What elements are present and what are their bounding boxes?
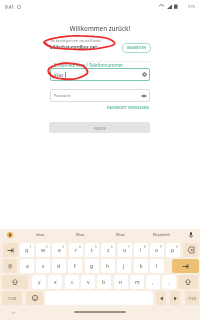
staticText: u xyxy=(123,247,127,254)
button[interactable]: z xyxy=(101,243,115,257)
staticText: 7 xyxy=(128,245,130,249)
staticText: Elisa xyxy=(116,232,125,237)
button[interactable]: , xyxy=(146,275,160,289)
staticText: E-Mail-Adresse / Telefonnummer xyxy=(54,62,123,68)
button[interactable]: s xyxy=(36,259,50,273)
staticText: Sie benötigen ein neues Konto? xyxy=(50,38,102,43)
staticText: 9 xyxy=(160,245,162,249)
button[interactable]: n xyxy=(114,275,128,289)
button[interactable]: . xyxy=(162,275,176,289)
button[interactable]: Voice input xyxy=(182,229,200,240)
staticText: g xyxy=(90,263,94,270)
staticText: 2 xyxy=(46,245,48,249)
staticText: z xyxy=(107,247,110,254)
staticText: h xyxy=(106,263,110,270)
button[interactable]: q xyxy=(20,243,34,257)
staticText: q xyxy=(25,247,29,254)
button[interactable]: e xyxy=(52,243,66,257)
button[interactable]: del xyxy=(183,243,198,257)
button[interactable]: g xyxy=(85,259,99,273)
staticText: y xyxy=(38,279,41,286)
staticText: e xyxy=(58,247,61,254)
staticText: r xyxy=(75,247,78,254)
button[interactable]: d xyxy=(52,259,66,273)
button[interactable]: l xyxy=(150,259,164,273)
button[interactable]: Elisa xyxy=(100,229,141,240)
button[interactable]: y xyxy=(32,275,46,289)
button[interactable]: enter xyxy=(172,259,199,273)
button[interactable]: larr xyxy=(156,291,166,305)
button[interactable]: elias xyxy=(50,68,150,81)
staticText: 3 xyxy=(62,245,64,249)
staticText: k xyxy=(140,263,143,270)
button[interactable]: tab xyxy=(3,243,18,257)
staticText: c xyxy=(71,279,74,286)
staticText: ?123 xyxy=(8,296,17,301)
staticText: m xyxy=(135,279,140,286)
staticText: d xyxy=(57,263,61,270)
button[interactable]: h xyxy=(101,259,115,273)
staticText: x xyxy=(54,279,57,286)
button[interactable]: rarr xyxy=(170,291,180,305)
button[interactable]: p xyxy=(166,243,180,257)
button[interactable]: w xyxy=(36,243,50,257)
staticText: w xyxy=(41,247,45,254)
staticText: elias xyxy=(36,232,45,237)
button[interactable]: BEARBEITEN xyxy=(122,43,151,53)
staticText: ?123 xyxy=(188,296,197,301)
staticText: l xyxy=(156,263,158,270)
staticText: 8 xyxy=(144,245,146,249)
button[interactable]: r xyxy=(69,243,83,257)
staticText: 5 xyxy=(95,245,97,249)
button[interactable]: t xyxy=(85,243,99,257)
button[interactable]: Show password xyxy=(141,93,147,99)
button[interactable]: j xyxy=(117,259,131,273)
button[interactable]: Elisabeth xyxy=(141,229,182,240)
staticText: 9:41 xyxy=(5,4,15,10)
staticText: s xyxy=(42,263,45,270)
staticText: b xyxy=(102,279,106,286)
button[interactable]: a xyxy=(20,259,34,273)
staticText: PASSWORT VERGESSEN xyxy=(107,105,149,110)
staticText: , xyxy=(152,279,154,286)
button[interactable]: u xyxy=(118,243,132,257)
staticText: bildschat-nordbus.net xyxy=(50,44,98,50)
staticText: elias xyxy=(54,72,64,78)
staticText: a xyxy=(26,263,29,270)
button[interactable]: b xyxy=(97,275,111,289)
staticText: Willkommen zurück! xyxy=(0,24,200,32)
staticText: f xyxy=(74,263,76,270)
staticText: 6 xyxy=(111,245,113,249)
button[interactable]: Keyboard settings xyxy=(0,229,20,240)
button[interactable]: v xyxy=(81,275,95,289)
button[interactable]: ?123 xyxy=(2,291,22,305)
staticText: j xyxy=(123,263,125,270)
staticText: Elias xyxy=(76,232,85,237)
staticText: BEARBEITEN xyxy=(127,46,146,50)
staticText: i xyxy=(140,247,142,254)
button[interactable]: WEITER xyxy=(49,122,150,133)
button[interactable]: x xyxy=(48,275,62,289)
staticText: p xyxy=(171,247,175,254)
button[interactable]: Passwort xyxy=(50,89,150,102)
button[interactable]: o xyxy=(150,243,164,257)
button[interactable]: f xyxy=(68,259,82,273)
button[interactable]: c xyxy=(65,275,79,289)
staticText: 0 xyxy=(176,245,178,249)
button[interactable]: k xyxy=(134,259,148,273)
staticText: v xyxy=(87,279,90,286)
button[interactable]: Elias xyxy=(60,229,100,240)
button[interactable]: ?123b xyxy=(185,291,199,305)
button[interactable]: shift2 xyxy=(178,275,198,289)
button[interactable]: sym xyxy=(3,259,17,273)
button[interactable]: i xyxy=(134,243,148,257)
button[interactable]: emoji xyxy=(26,291,43,305)
button[interactable]: elias xyxy=(20,229,60,240)
button[interactable]: m xyxy=(130,275,144,289)
staticText: o xyxy=(155,247,159,254)
button[interactable]: Clear text xyxy=(142,72,147,77)
staticText: WEITER xyxy=(94,126,106,130)
button[interactable]: PASSWORT VERGESSEN xyxy=(106,104,150,111)
button[interactable]: shift xyxy=(2,275,28,289)
